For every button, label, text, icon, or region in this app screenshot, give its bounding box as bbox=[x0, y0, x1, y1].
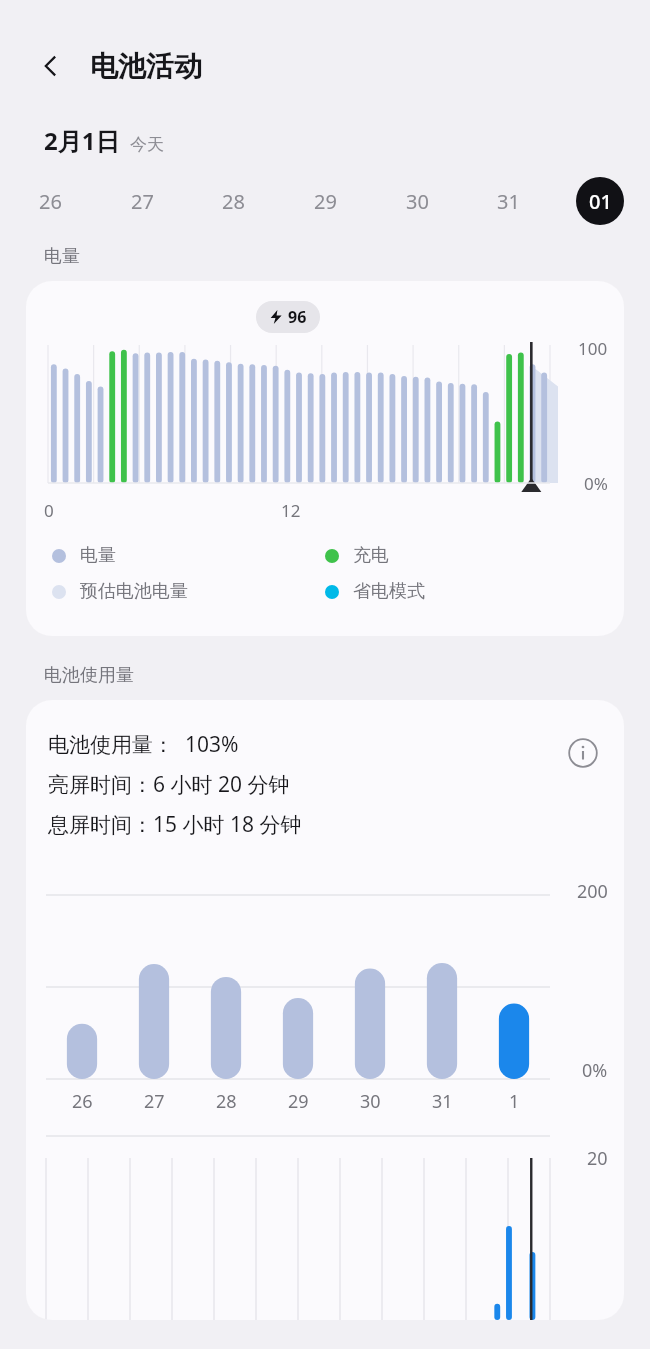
staticText: 27 bbox=[131, 188, 154, 215]
button[interactable]: 返回 bbox=[28, 43, 74, 89]
staticText: 30 bbox=[406, 188, 429, 215]
button[interactable]: 信息 bbox=[560, 730, 606, 776]
staticText: 0% bbox=[584, 472, 608, 495]
staticText: 电池活动 bbox=[90, 49, 202, 84]
button[interactable]: 30 bbox=[393, 177, 441, 225]
staticText: 电量 bbox=[44, 245, 80, 268]
staticText: 亮屏时间：6 小时 20 分钟 bbox=[48, 770, 290, 799]
staticText: 29 bbox=[314, 188, 337, 215]
button[interactable]: 96 bbox=[26, 281, 624, 636]
staticText: 充电 bbox=[353, 544, 389, 567]
staticText: 28 bbox=[216, 1089, 237, 1114]
button[interactable]: 29 bbox=[301, 177, 349, 225]
staticText: 电池使用量： 103% bbox=[48, 730, 239, 759]
staticText: 26 bbox=[72, 1089, 93, 1114]
button[interactable]: 31 bbox=[484, 177, 532, 225]
staticText: 预估电池电量 bbox=[80, 580, 188, 603]
staticText: 1 bbox=[509, 1089, 520, 1114]
staticText: 0% bbox=[582, 1058, 608, 1083]
button[interactable]: 27 bbox=[118, 177, 166, 225]
staticText: 电量 bbox=[80, 544, 116, 567]
staticText: 28 bbox=[222, 188, 245, 215]
staticText: 26 bbox=[39, 188, 62, 215]
staticText: 31 bbox=[497, 188, 520, 215]
button[interactable]: 01 bbox=[576, 177, 624, 225]
staticText: 27 bbox=[144, 1089, 165, 1114]
staticText: 今天 bbox=[130, 134, 164, 155]
staticText: 息屏时间：15 小时 18 分钟 bbox=[48, 810, 302, 839]
button[interactable]: 电池使用量： 103% bbox=[26, 700, 624, 1320]
staticText: 31 bbox=[432, 1089, 453, 1114]
staticText: 省电模式 bbox=[353, 580, 425, 603]
staticText: 200 bbox=[577, 879, 608, 904]
staticText: 29 bbox=[288, 1089, 309, 1114]
button[interactable]: 28 bbox=[209, 177, 257, 225]
staticText: 电池使用量 bbox=[44, 664, 134, 687]
staticText: 100 bbox=[578, 337, 608, 360]
staticText: 2月1日 bbox=[44, 124, 120, 157]
staticText: 96 bbox=[288, 306, 307, 328]
staticText: 30 bbox=[360, 1089, 381, 1114]
staticText: 20 bbox=[587, 1146, 608, 1171]
staticText: 12 bbox=[281, 499, 301, 522]
staticText: 0 bbox=[44, 499, 54, 522]
button[interactable]: 26 bbox=[26, 177, 74, 225]
staticText: 01 bbox=[589, 188, 612, 215]
